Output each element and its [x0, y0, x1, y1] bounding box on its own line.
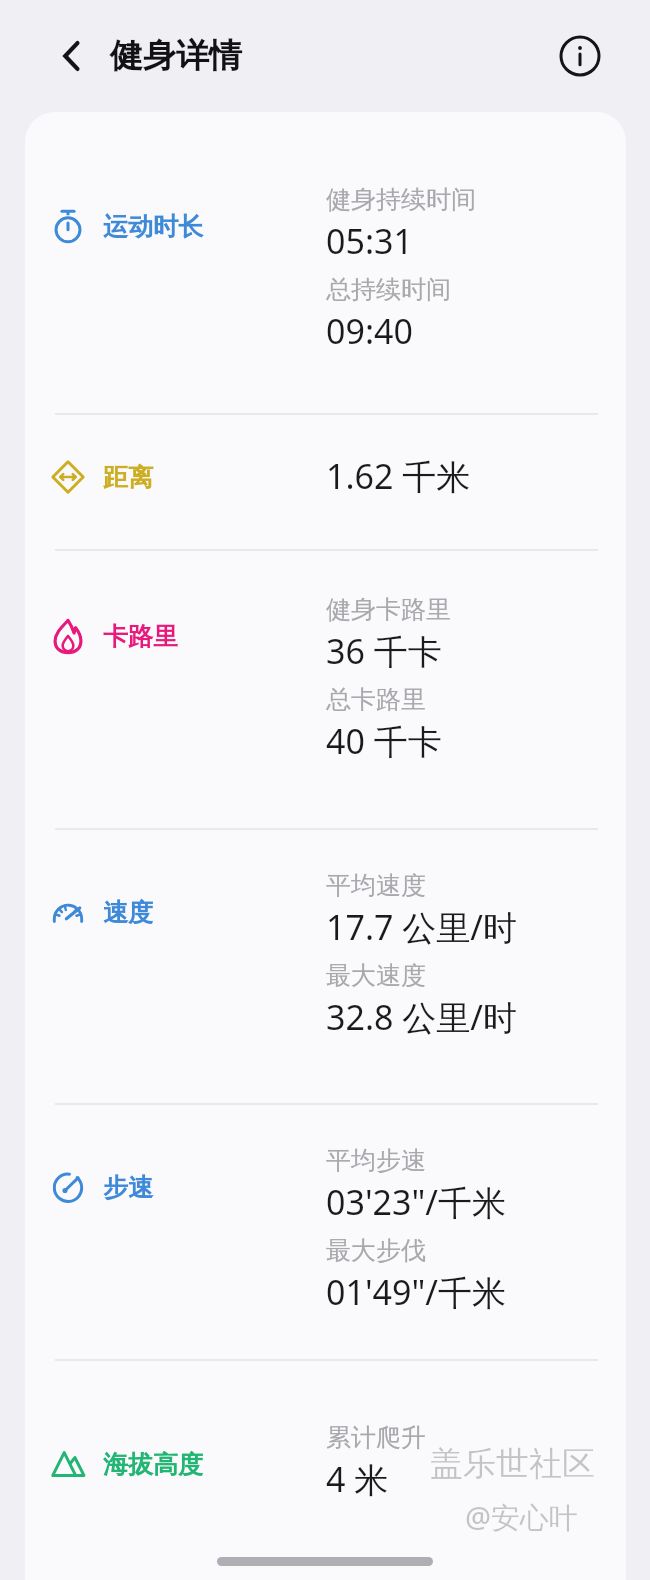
staticText: 卡路里 — [103, 621, 178, 652]
staticText: 40 千卡 — [326, 718, 442, 764]
staticText: 36 千卡 — [326, 628, 442, 674]
staticText: 09:40 — [326, 308, 413, 354]
staticText: 平均步速 — [326, 1145, 426, 1176]
staticText: 盖乐世社区 — [430, 1443, 595, 1485]
staticText: 健身持续时间 — [326, 184, 476, 215]
staticText: 32.8 公里/时 — [326, 994, 517, 1040]
staticText: 最大步伐 — [326, 1235, 426, 1266]
staticText: 01'49"/千米 — [326, 1269, 506, 1315]
staticText: 速度 — [103, 897, 153, 928]
button[interactable]: 卡路里 — [49, 606, 309, 666]
staticText: 健身详情 — [110, 35, 242, 77]
button[interactable]: Back — [42, 26, 102, 86]
button[interactable]: Information — [550, 26, 610, 86]
button[interactable]: 海拔高度 — [49, 1434, 309, 1494]
staticText: 海拔高度 — [103, 1449, 203, 1480]
staticText: @安心叶 — [465, 1497, 579, 1537]
staticText: 平均速度 — [326, 870, 426, 901]
staticText: 1.62 千米 — [326, 453, 471, 499]
button[interactable]: 距离 — [49, 449, 309, 505]
staticText: 05:31 — [326, 218, 413, 264]
button[interactable]: 运动时长 — [49, 196, 309, 256]
staticText: 距离 — [103, 462, 153, 493]
staticText: 最大速度 — [326, 960, 426, 991]
staticText: 健身卡路里 — [326, 594, 451, 625]
staticText: 总持续时间 — [326, 274, 451, 305]
staticText: 总卡路里 — [326, 684, 426, 715]
button[interactable]: 速度 — [49, 882, 309, 942]
staticText: 累计爬升 — [326, 1422, 426, 1453]
button[interactable]: 步速 — [49, 1157, 309, 1217]
staticText: 步速 — [103, 1172, 153, 1203]
staticText: 03'23"/千米 — [326, 1179, 506, 1225]
staticText: 17.7 公里/时 — [326, 904, 517, 950]
staticText: 4 米 — [326, 1456, 389, 1502]
staticText: 运动时长 — [103, 211, 203, 242]
